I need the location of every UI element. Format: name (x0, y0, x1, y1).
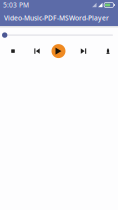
button[interactable]: Volume (98, 42, 118, 60)
button[interactable]: Stop (0, 42, 26, 60)
button[interactable]: Play (48, 42, 69, 60)
button[interactable]: Next track (69, 42, 98, 60)
button[interactable]: Previous track (26, 42, 48, 60)
staticText: Video-Music-PDF-MSWord-Player (4, 14, 109, 22)
staticText: 5:03 PM (3, 1, 29, 9)
